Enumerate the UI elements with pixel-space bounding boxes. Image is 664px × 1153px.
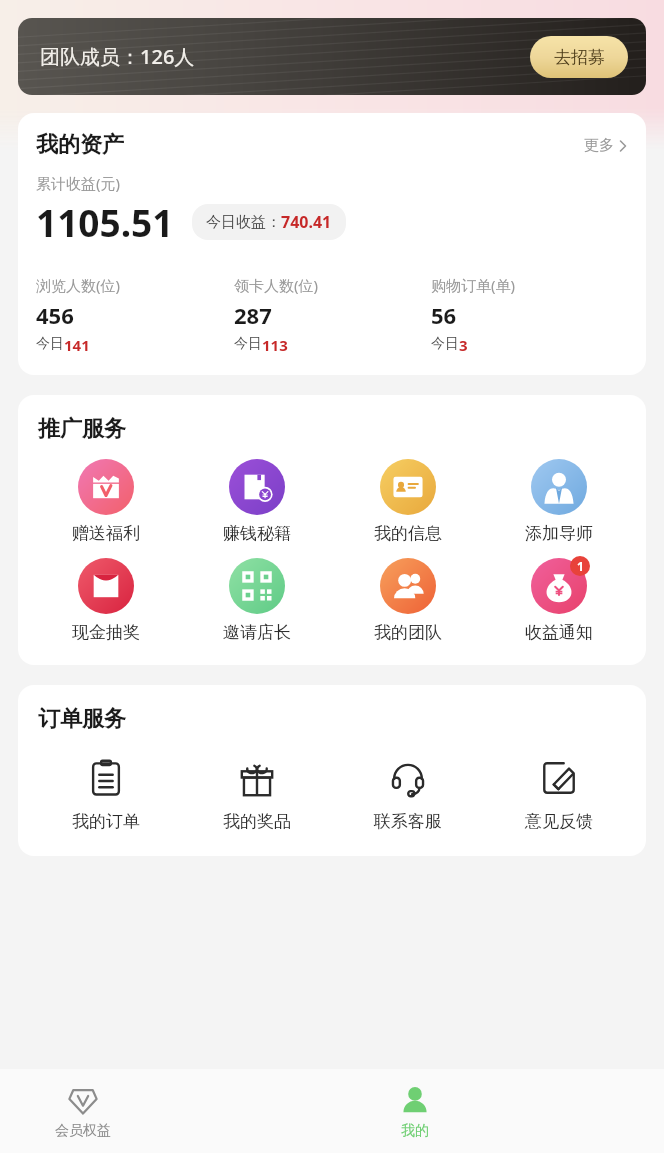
- button[interactable]: 我的团队: [332, 558, 483, 643]
- button[interactable]: 1: [483, 558, 634, 643]
- staticText: 购物订单(单): [431, 275, 516, 295]
- staticText: 我的信息: [374, 523, 442, 544]
- button[interactable]: 团队成员：126人: [18, 18, 646, 95]
- staticText: 今日: [36, 335, 64, 353]
- button[interactable]: 赠送福利: [30, 459, 181, 544]
- staticText: 我的: [401, 1122, 429, 1140]
- button[interactable]: 会员权益: [0, 1069, 166, 1153]
- button[interactable]: 赚钱秘籍: [181, 459, 332, 544]
- button[interactable]: 意见反馈: [483, 755, 634, 832]
- staticText: 56: [431, 300, 457, 330]
- button[interactable]: 我的: [332, 1069, 498, 1153]
- button[interactable]: 去招募: [530, 36, 628, 78]
- button[interactable]: 添加导师: [483, 459, 634, 544]
- staticText: 我的订单: [72, 811, 140, 832]
- button[interactable]: 邀请店长: [181, 558, 332, 643]
- staticText: 推广服务: [38, 415, 126, 443]
- button[interactable]: 我的奖品: [181, 755, 332, 832]
- staticText: 141: [64, 335, 90, 355]
- staticText: 1105.51: [36, 197, 174, 247]
- staticText: 1: [577, 558, 584, 574]
- staticText: 今日收益：: [206, 213, 281, 232]
- staticText: 现金抽奖: [72, 622, 140, 643]
- staticText: 287: [234, 300, 272, 330]
- staticText: 团队成员：126人: [40, 43, 195, 70]
- staticText: 累计收益(元): [36, 173, 121, 193]
- staticText: 我的奖品: [223, 811, 291, 832]
- button[interactable]: 现金抽奖: [30, 558, 181, 643]
- staticText: 今日: [431, 335, 459, 353]
- staticText: 联系客服: [374, 811, 442, 832]
- staticText: 我的资产: [36, 131, 584, 159]
- staticText: 赚钱秘籍: [223, 523, 291, 544]
- button[interactable]: 领卡人数(位): [234, 275, 431, 355]
- staticText: 浏览人数(位): [36, 275, 121, 295]
- staticText: 订单服务: [38, 705, 126, 733]
- staticText: 收益通知: [525, 622, 593, 643]
- staticText: 赠送福利: [72, 523, 140, 544]
- staticText: 740.41: [281, 211, 332, 233]
- staticText: 领卡人数(位): [234, 275, 319, 295]
- button[interactable]: 浏览人数(位): [36, 275, 234, 355]
- button[interactable]: 更多: [584, 136, 628, 155]
- staticText: 邀请店长: [223, 622, 291, 643]
- button[interactable]: 我的信息: [332, 459, 483, 544]
- staticText: 会员权益: [55, 1122, 111, 1140]
- staticText: 今日: [234, 335, 262, 353]
- staticText: 456: [36, 300, 74, 330]
- button[interactable]: 我的订单: [30, 755, 181, 832]
- staticText: 去招募: [554, 47, 605, 68]
- staticText: 添加导师: [525, 523, 593, 544]
- staticText: 意见反馈: [525, 811, 593, 832]
- staticText: 更多: [584, 136, 614, 155]
- button[interactable]: 购物订单(单): [431, 275, 628, 355]
- staticText: 我的团队: [374, 622, 442, 643]
- staticText: 113: [262, 335, 288, 355]
- staticText: 3: [459, 335, 468, 355]
- button[interactable]: 联系客服: [332, 755, 483, 832]
